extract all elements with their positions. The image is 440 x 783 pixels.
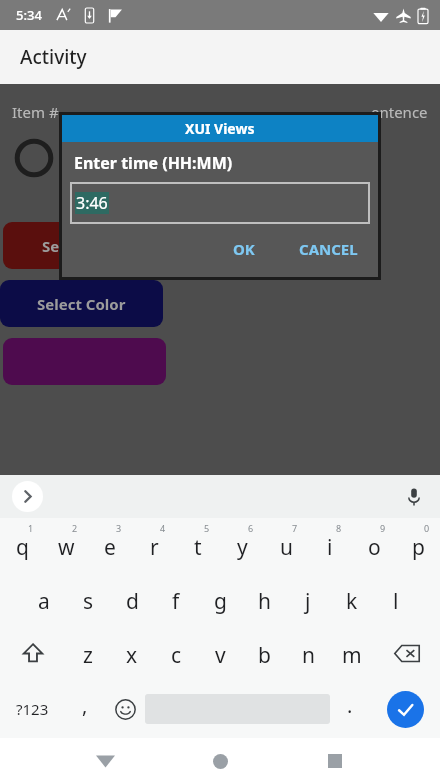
staticText: x bbox=[126, 641, 138, 670]
staticText: XUI Views bbox=[185, 119, 255, 138]
staticText: b bbox=[258, 641, 271, 670]
staticText: 3:46 bbox=[244, 236, 274, 256]
staticText: , bbox=[82, 692, 88, 719]
button[interactable]: 3:46 bbox=[71, 183, 369, 223]
button[interactable]: 5 bbox=[176, 518, 220, 572]
staticText: e bbox=[104, 533, 116, 562]
staticText: h bbox=[258, 587, 271, 616]
button[interactable]: n bbox=[286, 626, 330, 680]
other: Wi-Fi bbox=[373, 8, 389, 24]
button[interactable]: , bbox=[65, 680, 105, 738]
staticText: entence bbox=[371, 102, 428, 122]
staticText: t bbox=[194, 533, 202, 562]
button[interactable]: d bbox=[110, 572, 154, 626]
other: Battery charging bbox=[418, 7, 428, 24]
staticText: q bbox=[16, 533, 29, 562]
button[interactable]: 9 bbox=[352, 518, 396, 572]
staticText: Select Date bbox=[42, 236, 127, 256]
staticText: s bbox=[83, 587, 94, 616]
button[interactable]: 3:46 bbox=[179, 222, 339, 269]
button[interactable]: x bbox=[110, 626, 154, 680]
button[interactable]: 8 bbox=[308, 518, 352, 572]
staticText: Select Color bbox=[37, 294, 126, 314]
staticText: o bbox=[368, 533, 381, 562]
staticText: Activity bbox=[20, 44, 87, 70]
other: Font size bbox=[55, 7, 71, 23]
button[interactable]: g bbox=[198, 572, 242, 626]
staticText: v bbox=[215, 641, 226, 670]
staticText: r bbox=[150, 533, 159, 562]
button[interactable]: s bbox=[66, 572, 110, 626]
staticText: 4 bbox=[160, 522, 166, 534]
button[interactable]: 2 bbox=[44, 518, 88, 572]
button[interactable]: k bbox=[330, 572, 374, 626]
button[interactable]: m bbox=[330, 626, 374, 680]
staticText: . bbox=[347, 692, 353, 719]
button[interactable]: Radio option bbox=[14, 138, 54, 178]
staticText: k bbox=[346, 587, 358, 616]
button[interactable]: Emoji bbox=[105, 680, 145, 738]
staticText: z bbox=[83, 641, 93, 670]
button[interactable]: 6 bbox=[220, 518, 264, 572]
other: Notification bbox=[107, 7, 124, 24]
button[interactable]: Backspace bbox=[374, 626, 440, 680]
button[interactable] bbox=[3, 338, 166, 385]
staticText: 5 bbox=[204, 522, 210, 534]
button[interactable]: Expand suggestions bbox=[12, 481, 43, 512]
staticText: d bbox=[126, 587, 139, 616]
button[interactable]: h bbox=[242, 572, 286, 626]
button[interactable]: a bbox=[22, 572, 66, 626]
button[interactable]: Home bbox=[200, 741, 240, 781]
button[interactable]: Select Date bbox=[3, 222, 166, 269]
button[interactable]: c bbox=[154, 626, 198, 680]
button[interactable]: Voice input bbox=[404, 487, 424, 507]
staticText: g bbox=[214, 587, 227, 616]
button[interactable]: 3 bbox=[88, 518, 132, 572]
staticText: l bbox=[393, 587, 399, 616]
button[interactable]: . bbox=[330, 680, 370, 738]
button[interactable]: OK bbox=[223, 235, 265, 263]
staticText: j bbox=[305, 587, 311, 616]
staticText: CANCEL bbox=[299, 239, 358, 259]
staticText: ?123 bbox=[16, 699, 49, 719]
staticText: n bbox=[302, 641, 315, 670]
button[interactable]: 1 bbox=[0, 518, 44, 572]
staticText: y bbox=[237, 533, 248, 562]
button[interactable]: j bbox=[286, 572, 330, 626]
other: Airplane mode bbox=[396, 8, 411, 23]
button[interactable]: z bbox=[66, 626, 110, 680]
staticText: i bbox=[327, 533, 333, 562]
staticText: Enter time (HH:MM) bbox=[74, 152, 233, 174]
staticText: w bbox=[58, 533, 75, 562]
button[interactable]: Shift bbox=[0, 626, 66, 680]
button[interactable]: b bbox=[242, 626, 286, 680]
staticText: 2 bbox=[72, 522, 78, 534]
staticText: 5:34 bbox=[16, 6, 42, 24]
button[interactable]: Back bbox=[85, 741, 125, 781]
button[interactable]: 4 bbox=[132, 518, 176, 572]
button[interactable]: Recents bbox=[315, 741, 355, 781]
button[interactable]: Done bbox=[370, 680, 440, 738]
staticText: 3:46 bbox=[76, 192, 108, 214]
staticText: c bbox=[171, 641, 182, 670]
staticText: Item # bbox=[12, 102, 59, 122]
button[interactable]: l bbox=[374, 572, 418, 626]
staticText: 8 bbox=[336, 522, 342, 534]
button[interactable]: CANCEL bbox=[293, 235, 364, 263]
staticText: 7 bbox=[292, 522, 298, 534]
staticText: 1 bbox=[28, 522, 34, 534]
button[interactable]: 0 bbox=[396, 518, 440, 572]
staticText: f bbox=[172, 587, 180, 616]
button[interactable]: ?123 bbox=[0, 680, 65, 738]
other: Download bbox=[82, 8, 97, 23]
staticText: u bbox=[280, 533, 293, 562]
staticText: a bbox=[38, 587, 50, 616]
button[interactable]: f bbox=[154, 572, 198, 626]
button[interactable]: v bbox=[198, 626, 242, 680]
staticText: p bbox=[412, 533, 425, 562]
staticText: OK bbox=[233, 239, 255, 259]
button[interactable]: Select Color bbox=[0, 280, 163, 327]
staticText: m bbox=[342, 641, 362, 670]
button[interactable]: 7 bbox=[264, 518, 308, 572]
